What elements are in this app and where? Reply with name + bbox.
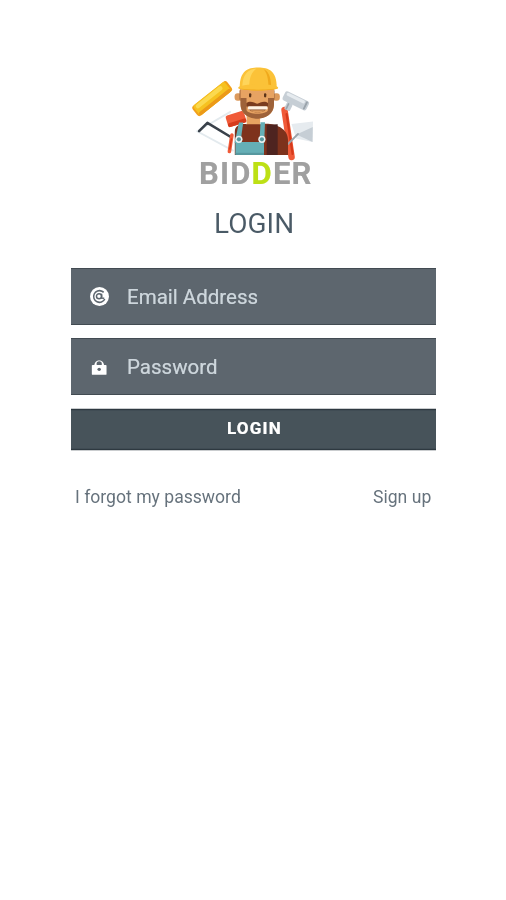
button[interactable]: Email Address: [71, 268, 436, 325]
staticText: BIDDER: [199, 155, 313, 191]
staticText: Password: [127, 355, 218, 379]
staticText: LOGIN: [214, 207, 295, 240]
button[interactable]: I forgot my password: [75, 487, 241, 508]
button[interactable]: Sign up: [373, 487, 432, 508]
staticText: LOGIN: [227, 418, 282, 438]
staticText: Email Address: [127, 285, 259, 309]
button[interactable]: LOGIN: [71, 409, 436, 450]
button[interactable]: Password: [71, 338, 436, 395]
